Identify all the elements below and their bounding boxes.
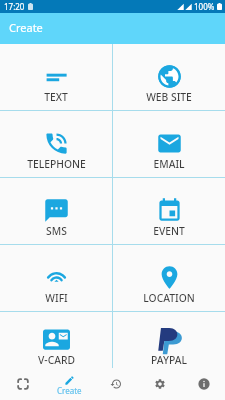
button[interactable]: PAYPAL — [113, 312, 225, 368]
button[interactable]: WEB SITE — [113, 44, 225, 110]
staticText: WIFI — [45, 291, 68, 305]
button[interactable]: Info — [182, 368, 225, 400]
staticText: 17:20 — [4, 1, 25, 12]
button[interactable]: V-CARD — [0, 312, 112, 368]
button[interactable]: TEXT — [0, 44, 112, 110]
button[interactable]: Settings — [138, 368, 182, 400]
button[interactable]: EMAIL — [113, 111, 225, 177]
button[interactable]: Create — [45, 368, 94, 400]
staticText: TELEPHONE — [27, 157, 86, 171]
staticText: WEB SITE — [146, 90, 192, 104]
button[interactable]: EVENT — [113, 178, 225, 244]
staticText: LOCATION — [143, 291, 195, 305]
button[interactable]: Scan — [0, 368, 45, 400]
staticText: EVENT — [153, 224, 185, 238]
staticText: Create — [57, 385, 82, 396]
staticText: EMAIL — [153, 157, 185, 171]
staticText: TEXT — [44, 90, 68, 104]
button[interactable]: TELEPHONE — [0, 111, 112, 177]
staticText: Create — [9, 20, 43, 35]
button[interactable]: SMS — [0, 178, 112, 244]
staticText: PAYPAL — [151, 353, 187, 367]
button[interactable]: LOCATION — [113, 245, 225, 311]
staticText: V-CARD — [38, 353, 75, 367]
staticText: SMS — [46, 224, 67, 238]
button[interactable]: History — [94, 368, 138, 400]
staticText: 100% — [194, 1, 215, 12]
button[interactable]: WIFI — [0, 245, 112, 311]
